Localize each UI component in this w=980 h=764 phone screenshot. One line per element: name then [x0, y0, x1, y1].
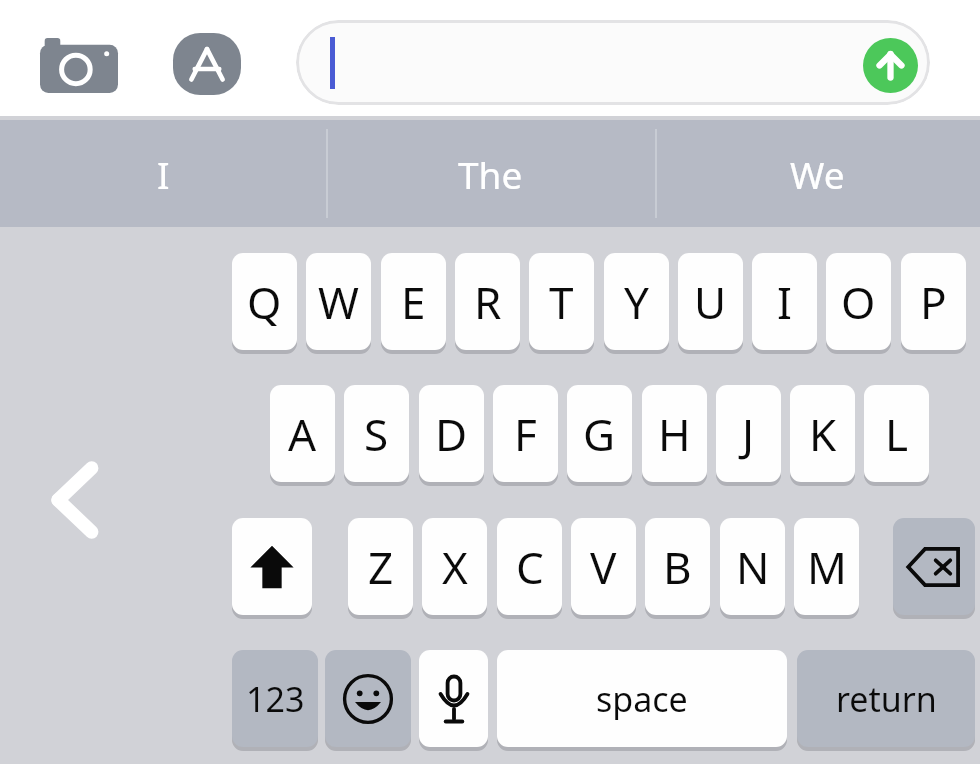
button[interactable]: U	[678, 253, 743, 350]
staticText: C	[516, 537, 544, 597]
button[interactable]: C	[497, 518, 562, 615]
staticText: L	[885, 404, 909, 464]
button[interactable]: P	[901, 253, 966, 350]
button[interactable]: D	[419, 385, 484, 482]
button[interactable]: The	[326, 120, 655, 227]
staticText: K	[809, 404, 837, 464]
staticText: We	[790, 149, 845, 199]
staticText: D	[435, 404, 468, 464]
staticText: H	[658, 404, 691, 464]
staticText: return	[836, 676, 937, 722]
button[interactable]: App Store	[173, 33, 241, 95]
button[interactable]: R	[455, 253, 520, 350]
button[interactable]: A	[270, 385, 335, 482]
staticText: V	[590, 537, 617, 597]
button[interactable]: S	[344, 385, 409, 482]
button[interactable]: Z	[348, 518, 413, 615]
staticText: Y	[624, 272, 649, 332]
staticText: N	[736, 537, 770, 597]
button[interactable]: Emoji	[325, 650, 411, 747]
staticText: R	[474, 272, 502, 332]
staticText: W	[318, 272, 359, 332]
button[interactable]: N	[720, 518, 785, 615]
staticText: I	[157, 149, 170, 199]
staticText: P	[920, 272, 947, 332]
button[interactable]: I	[752, 253, 817, 350]
staticText: B	[663, 537, 692, 597]
button[interactable]: M	[794, 518, 859, 615]
button[interactable]: G	[567, 385, 632, 482]
button[interactable]: B	[645, 518, 710, 615]
button[interactable]: We	[655, 120, 980, 227]
button[interactable]: T	[529, 253, 594, 350]
staticText: U	[694, 272, 727, 332]
staticText: space	[596, 676, 688, 722]
button[interactable]: return	[797, 650, 975, 747]
button[interactable]: Camera	[40, 37, 118, 93]
button[interactable]: K	[790, 385, 855, 482]
button[interactable]: X	[422, 518, 487, 615]
button[interactable]: Back	[42, 462, 104, 538]
staticText: S	[364, 404, 389, 464]
button[interactable]: V	[571, 518, 636, 615]
button[interactable]: Dictation	[419, 650, 488, 747]
staticText: F	[514, 404, 537, 464]
button[interactable]: Backspace	[893, 518, 975, 615]
staticText: J	[742, 404, 755, 464]
staticText: G	[583, 404, 616, 464]
button[interactable]: O	[826, 253, 891, 350]
button[interactable]: F	[493, 385, 558, 482]
button[interactable]: I	[0, 120, 326, 227]
staticText: M	[807, 537, 847, 597]
staticText: X	[442, 537, 468, 597]
staticText: O	[841, 272, 876, 332]
button[interactable]: Shift	[232, 518, 312, 615]
button[interactable]: space	[497, 650, 787, 747]
button[interactable]: H	[642, 385, 707, 482]
staticText: The	[458, 149, 523, 199]
button[interactable]: W	[306, 253, 371, 350]
staticText: T	[549, 272, 574, 332]
button[interactable]: Q	[232, 253, 297, 350]
button[interactable]: Message field	[296, 20, 930, 105]
button[interactable]: 123	[232, 650, 318, 747]
staticText: E	[401, 272, 426, 332]
button[interactable]: E	[381, 253, 446, 350]
staticText: 123	[246, 676, 305, 722]
button[interactable]: J	[716, 385, 781, 482]
button[interactable]: Y	[604, 253, 669, 350]
staticText: A	[288, 404, 317, 464]
staticText: Q	[247, 272, 282, 332]
staticText: I	[777, 272, 792, 332]
button[interactable]: Send	[863, 38, 918, 93]
staticText: Z	[368, 537, 394, 597]
button[interactable]: L	[864, 385, 929, 482]
